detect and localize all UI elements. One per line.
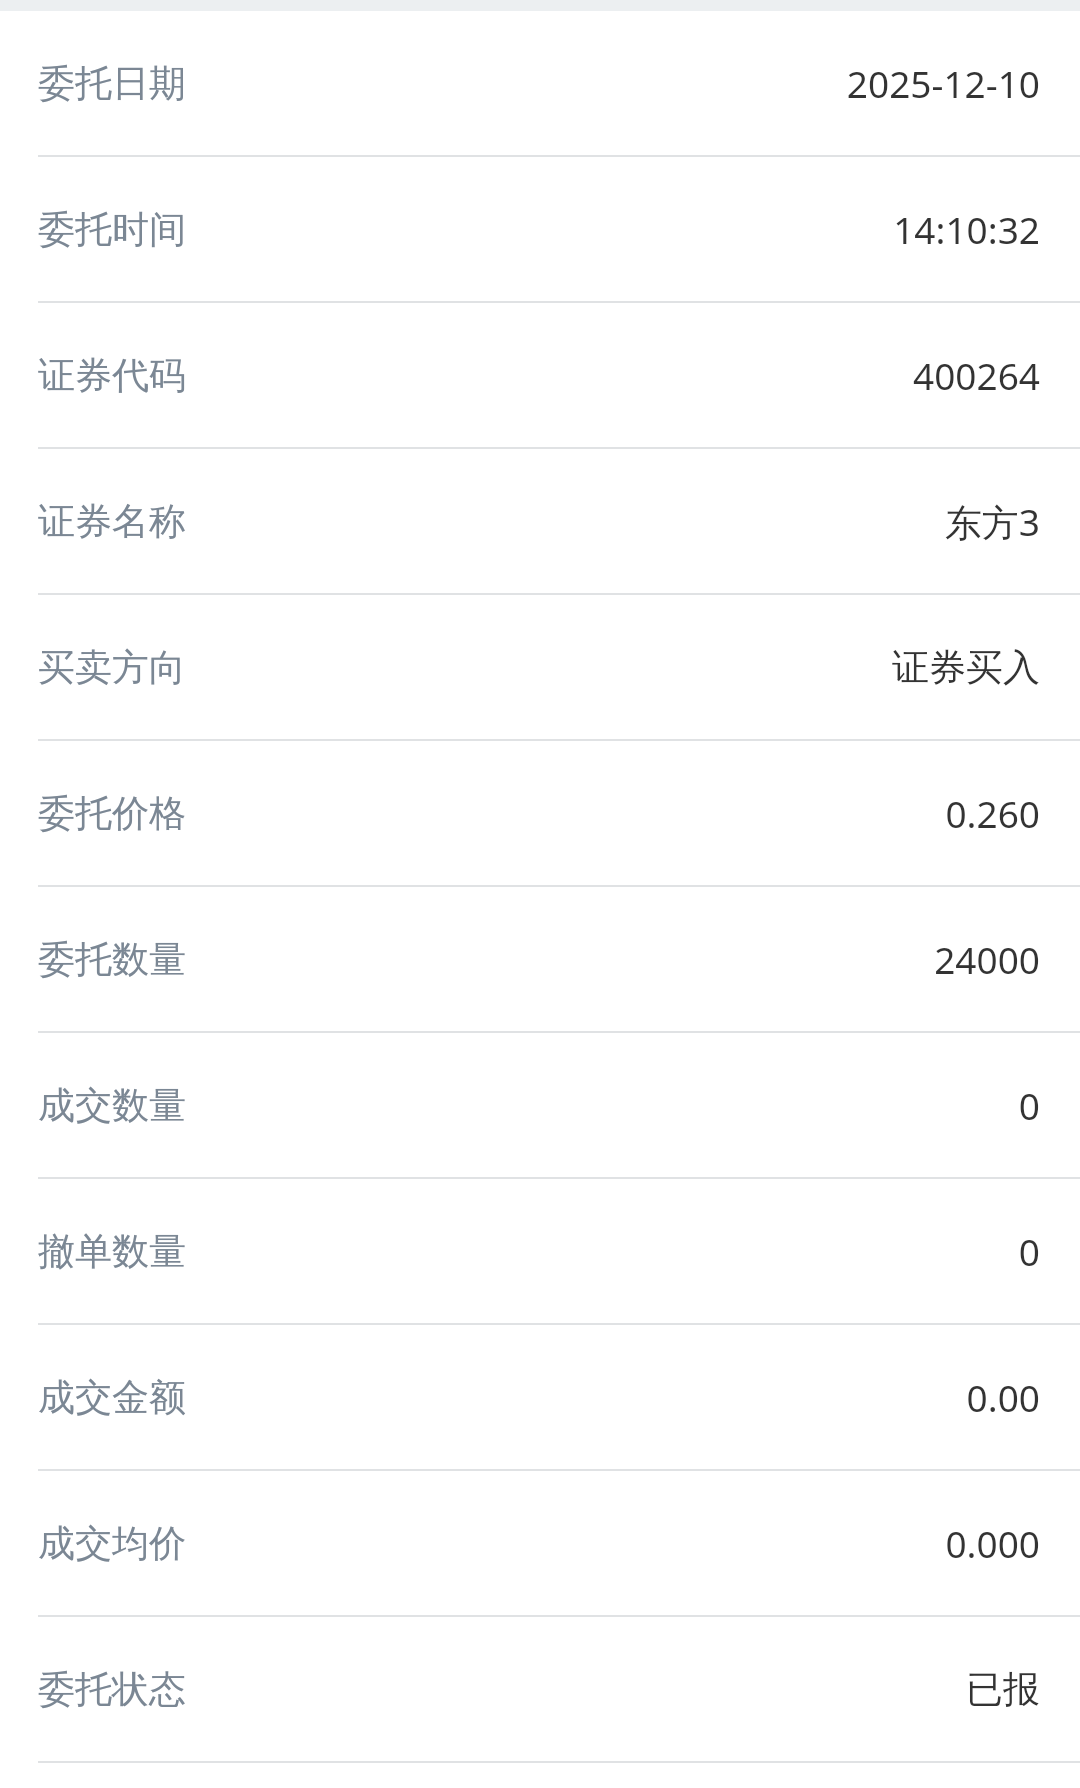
- staticText: 委托状态: [38, 1666, 186, 1713]
- button[interactable]: 成交金额: [0, 1325, 1080, 1469]
- staticText: 已报: [966, 1666, 1040, 1713]
- button[interactable]: 买卖方向: [0, 595, 1080, 739]
- staticText: 400264: [913, 350, 1040, 400]
- staticText: 0.00: [966, 1372, 1040, 1422]
- button[interactable]: 委托日期: [0, 11, 1080, 155]
- button[interactable]: 委托价格: [0, 741, 1080, 885]
- button[interactable]: 成交数量: [0, 1033, 1080, 1177]
- staticText: 成交均价: [38, 1520, 186, 1567]
- staticText: 0: [1018, 1226, 1040, 1276]
- staticText: 14:10:32: [893, 204, 1040, 254]
- staticText: 委托数量: [38, 936, 186, 983]
- staticText: 24000: [934, 934, 1040, 984]
- staticText: 证券名称: [38, 498, 186, 545]
- staticText: 委托时间: [38, 206, 186, 253]
- staticText: 成交数量: [38, 1082, 186, 1129]
- staticText: 2025-12-10: [846, 58, 1040, 108]
- staticText: 证券买入: [892, 644, 1040, 691]
- staticText: 成交金额: [38, 1374, 186, 1421]
- button[interactable]: 委托数量: [0, 887, 1080, 1031]
- staticText: 委托日期: [38, 60, 186, 107]
- button[interactable]: 成交均价: [0, 1471, 1080, 1615]
- staticText: 撤单数量: [38, 1228, 186, 1275]
- staticText: 0.260: [945, 788, 1040, 838]
- staticText: 委托价格: [38, 790, 186, 837]
- staticText: 0: [1018, 1080, 1040, 1130]
- staticText: 证券代码: [38, 352, 186, 399]
- button[interactable]: 证券代码: [0, 303, 1080, 447]
- button[interactable]: 证券名称: [0, 449, 1080, 593]
- button[interactable]: 撤单数量: [0, 1179, 1080, 1323]
- staticText: 东方3: [944, 496, 1040, 547]
- button[interactable]: 委托状态: [0, 1617, 1080, 1761]
- button[interactable]: 委托时间: [0, 157, 1080, 301]
- staticText: 0.000: [945, 1518, 1040, 1568]
- staticText: 买卖方向: [38, 644, 186, 691]
